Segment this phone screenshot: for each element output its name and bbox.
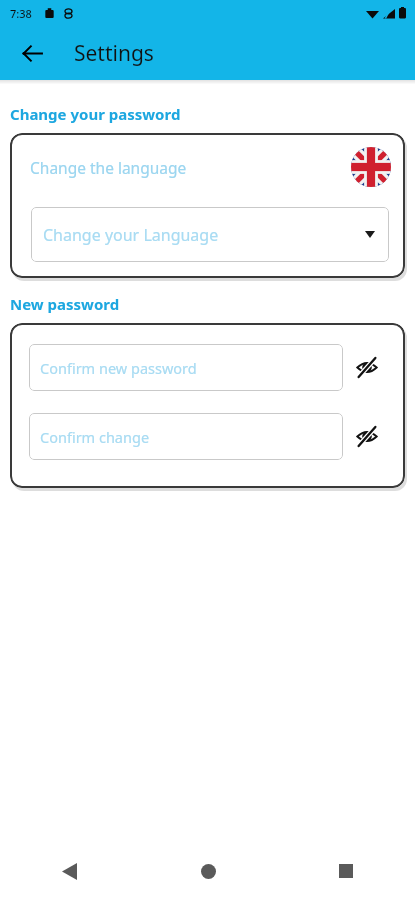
button[interactable]: Show password [343, 413, 391, 460]
button[interactable]: Confirm change [29, 413, 343, 460]
button[interactable]: Back [0, 842, 139, 900]
staticText: New password [10, 294, 120, 314]
staticText: Change your password [10, 104, 181, 124]
staticText: Change your Language [43, 224, 365, 246]
button[interactable]: Confirm new password [29, 344, 343, 391]
staticText: 7:38 [10, 6, 32, 21]
staticText: Confirm new password [40, 358, 197, 378]
button[interactable]: Change your Language [31, 207, 389, 262]
button[interactable]: Back [10, 31, 54, 75]
button[interactable]: Recent apps [277, 842, 415, 900]
staticText: Settings [74, 39, 154, 68]
staticText: Confirm change [40, 427, 150, 447]
button[interactable]: Language flag [351, 147, 391, 187]
button[interactable]: Change the language [10, 133, 405, 278]
button[interactable]: Show password [343, 344, 391, 391]
button[interactable]: Home [139, 842, 277, 900]
staticText: Change the language [30, 157, 351, 178]
